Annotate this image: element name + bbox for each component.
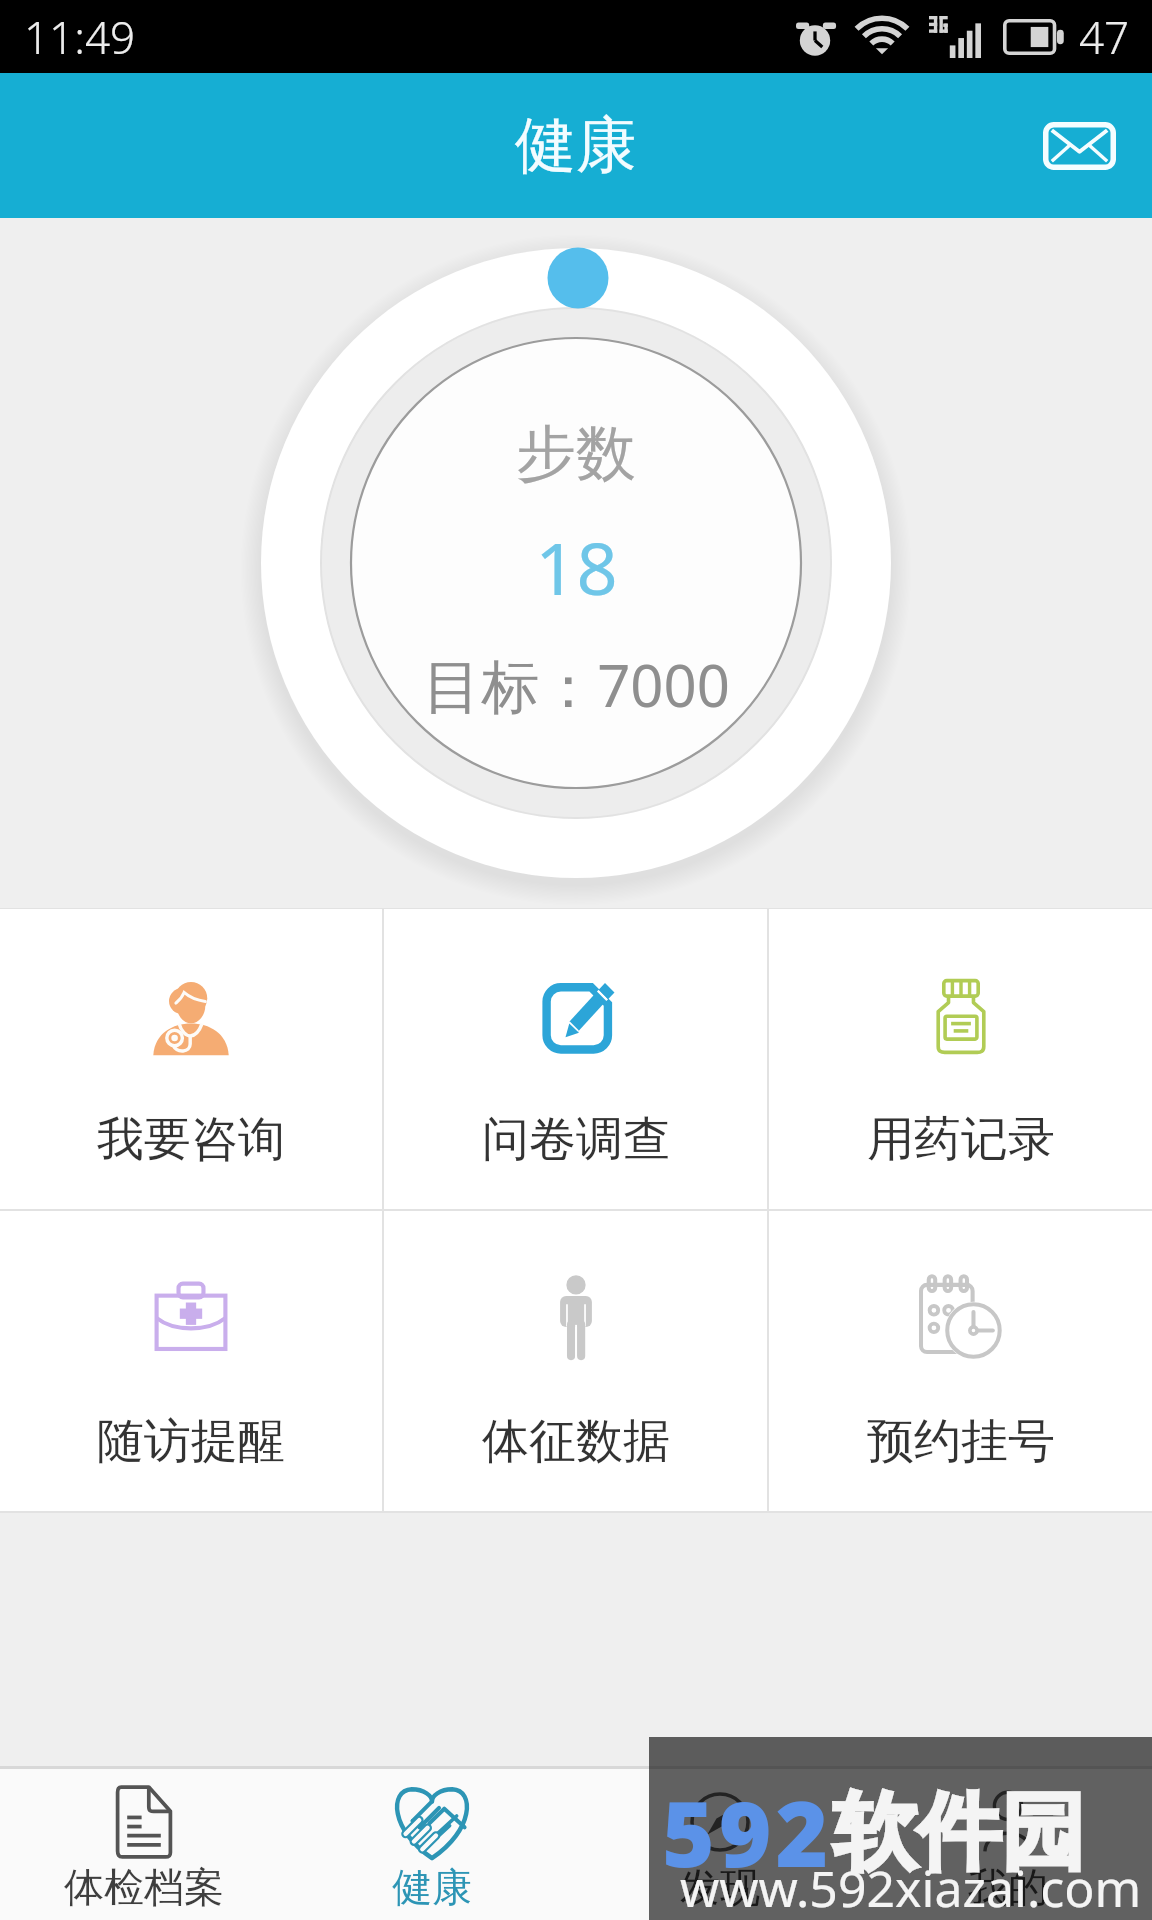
button[interactable]: 用药记录 — [769, 909, 1152, 1209]
staticText: 体征数据 — [482, 1412, 670, 1471]
button[interactable]: 预约挂号 — [769, 1211, 1152, 1511]
staticText: 我的 — [968, 1862, 1048, 1912]
staticText: 47 — [1079, 7, 1130, 67]
staticText: 18 — [535, 518, 618, 615]
button[interactable]: 我要咨询 — [0, 909, 382, 1209]
staticText: 发现 — [680, 1862, 760, 1912]
staticText: 步数 — [516, 416, 636, 492]
staticText: 目标：7000 — [423, 645, 730, 723]
staticText: 我要咨询 — [97, 1110, 285, 1169]
button[interactable]: 随访提醒 — [0, 1211, 382, 1511]
staticText: 随访提醒 — [97, 1412, 285, 1471]
staticText: 健康 — [515, 107, 637, 184]
staticText: 用药记录 — [867, 1110, 1055, 1169]
button[interactable]: 问卷调查 — [384, 909, 767, 1209]
button[interactable]: 体检档案 — [0, 1769, 288, 1920]
button[interactable]: 发现 — [576, 1769, 864, 1920]
staticText: 软件园 — [833, 1780, 1085, 1886]
button[interactable]: 健康 — [288, 1769, 576, 1920]
button[interactable]: 我的 — [864, 1769, 1152, 1920]
staticText: 问卷调查 — [482, 1110, 670, 1169]
staticText: 预约挂号 — [867, 1412, 1055, 1471]
staticText: www.592xiazai.com — [680, 1854, 1142, 1920]
staticText: 体检档案 — [64, 1862, 224, 1912]
staticText: 11:49 — [24, 7, 136, 67]
staticText: 592 — [662, 1771, 833, 1894]
staticText: 健康 — [392, 1862, 472, 1912]
button[interactable]: Messages — [1019, 86, 1139, 206]
button[interactable]: 体征数据 — [384, 1211, 767, 1511]
